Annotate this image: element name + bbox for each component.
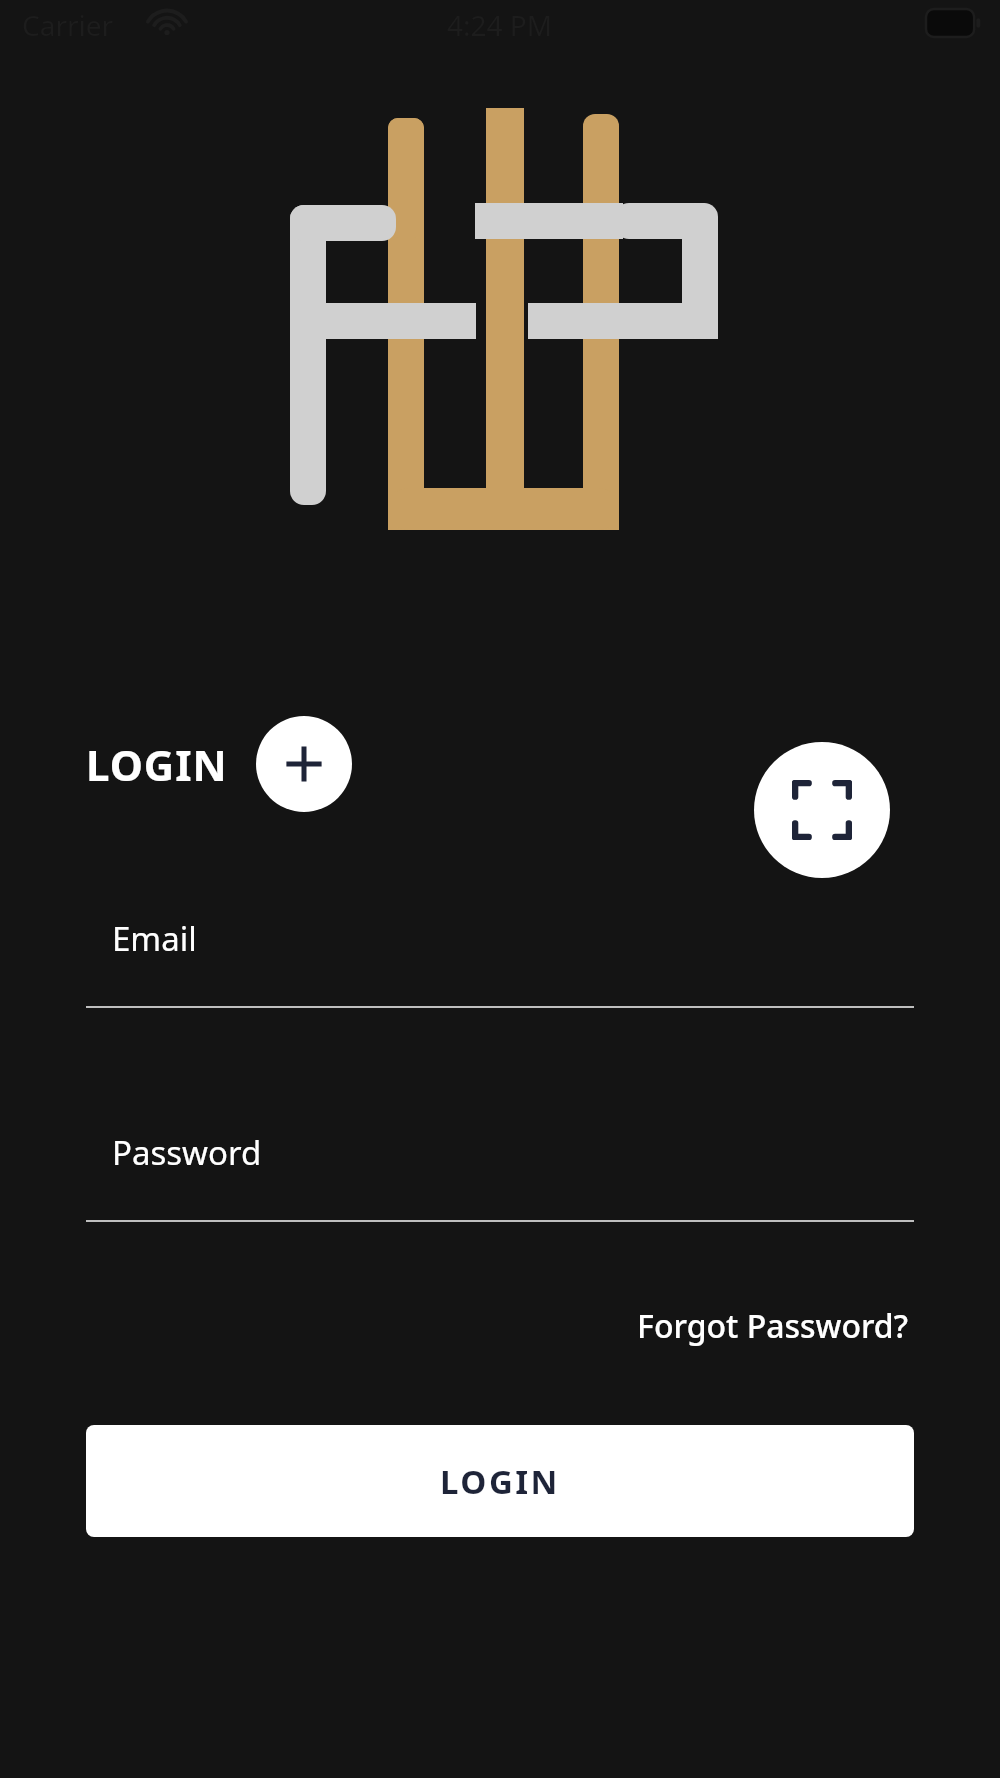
button[interactable]: Password — [86, 1112, 914, 1222]
staticText: Email — [112, 916, 197, 961]
button[interactable]: Forgot Password? — [631, 1296, 914, 1356]
button[interactable]: LOGIN — [86, 1425, 914, 1537]
button[interactable]: Scan code — [754, 742, 890, 878]
button[interactable]: Add account — [256, 716, 352, 812]
staticText: Forgot Password? — [637, 1304, 908, 1348]
staticText: LOGIN — [86, 736, 228, 793]
button[interactable]: Email — [86, 898, 914, 1008]
staticText: LOGIN — [440, 1459, 560, 1504]
staticText: Password — [112, 1130, 262, 1175]
